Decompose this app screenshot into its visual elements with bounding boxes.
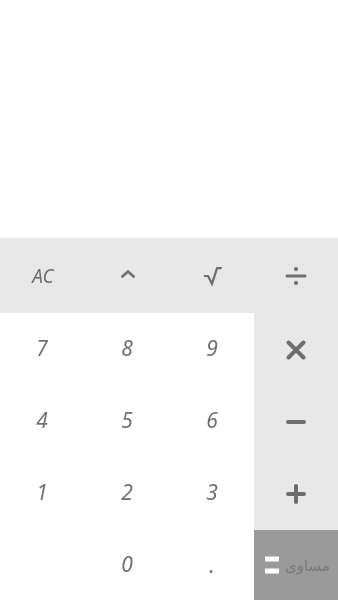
staticText: 8 (121, 334, 133, 363)
staticText: AC (32, 263, 54, 289)
button[interactable]: Equals (254, 530, 338, 600)
button[interactable]: 3 (169, 456, 254, 528)
button[interactable]: Divide (254, 238, 338, 313)
button[interactable]: Power (85, 238, 170, 313)
staticText: . (209, 549, 215, 579)
staticText: 0 (121, 550, 133, 579)
staticText: 6 (206, 406, 218, 435)
button[interactable]: Square root (170, 238, 254, 313)
button[interactable]: 7 (0, 313, 84, 384)
button[interactable]: 1 (0, 456, 84, 528)
button[interactable]: 8 (84, 313, 169, 384)
button[interactable]: Multiply (254, 313, 338, 386)
staticText: 2 (121, 478, 133, 507)
staticText: 7 (36, 334, 48, 363)
button[interactable]: Add (254, 458, 338, 530)
staticText: 3 (206, 478, 218, 507)
button[interactable]: 4 (0, 384, 84, 456)
staticText: 1 (36, 478, 48, 507)
staticText: 4 (36, 406, 48, 435)
button[interactable]: 6 (169, 384, 254, 456)
button[interactable]: . (169, 528, 254, 600)
staticText: 9 (206, 334, 218, 363)
button[interactable]: 5 (84, 384, 169, 456)
button[interactable]: AC (0, 238, 85, 313)
staticText: مساوی (285, 557, 330, 574)
button[interactable]: 0 (84, 528, 169, 600)
button[interactable]: Subtract (254, 386, 338, 458)
staticText: 5 (121, 406, 133, 435)
button[interactable]: 9 (169, 313, 254, 384)
button[interactable]: 2 (84, 456, 169, 528)
